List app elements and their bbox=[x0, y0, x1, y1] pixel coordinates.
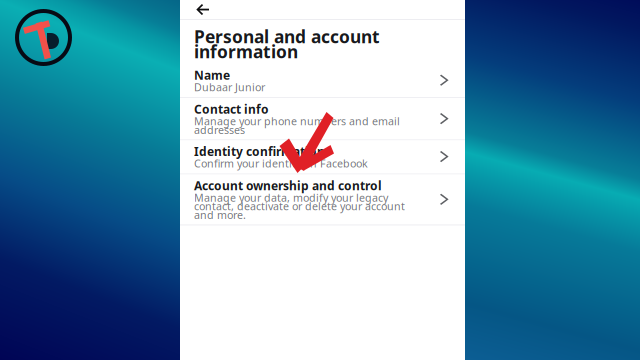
staticText: addresses bbox=[194, 123, 245, 137]
staticText: Personal and account bbox=[194, 25, 380, 48]
button[interactable]: Account ownership and control bbox=[180, 174, 465, 224]
staticText: Identity confirmation bbox=[194, 143, 325, 159]
staticText: contact, deactivate or delete your accou… bbox=[194, 199, 405, 213]
staticText: Contact info bbox=[194, 101, 269, 117]
button[interactable]: Identity confirmation bbox=[180, 140, 465, 173]
staticText: and more. bbox=[194, 208, 246, 222]
staticText: information bbox=[194, 40, 298, 63]
staticText: Manage your phone numbers and email bbox=[194, 114, 400, 128]
staticText: Account ownership and control bbox=[194, 177, 382, 193]
staticText: Dubaar Junior bbox=[194, 80, 265, 94]
staticText: Name bbox=[194, 67, 230, 83]
staticText: Confirm your identity on Facebook bbox=[194, 156, 368, 170]
staticText: Manage your data, modify your legacy bbox=[194, 190, 388, 205]
button[interactable]: Back bbox=[180, 0, 219, 18]
button[interactable]: Contact info bbox=[180, 98, 465, 139]
button[interactable]: Name bbox=[180, 64, 465, 97]
